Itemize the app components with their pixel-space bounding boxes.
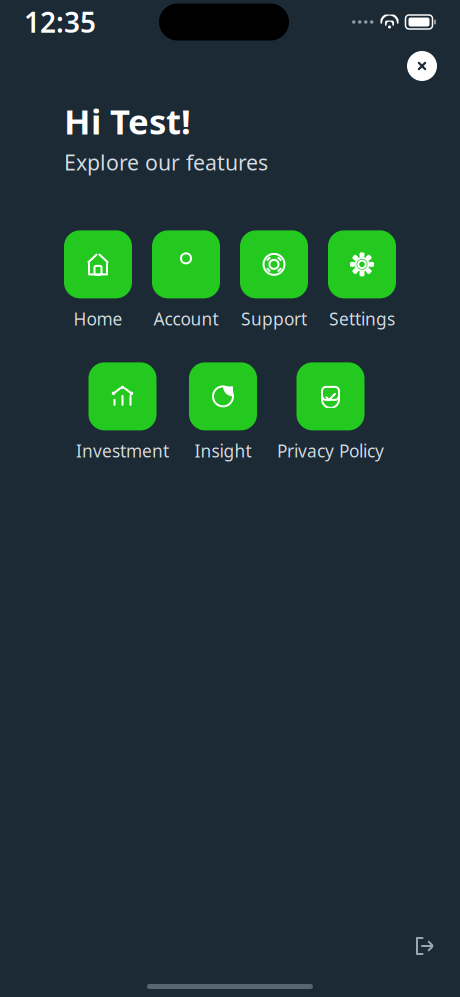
staticText: Privacy Policy — [277, 439, 384, 462]
button[interactable]: Insight — [189, 362, 257, 462]
button[interactable]: Close — [400, 44, 444, 88]
staticText: Investment — [76, 439, 169, 462]
staticText: Account — [153, 307, 218, 330]
staticText: Home — [73, 307, 122, 330]
button[interactable]: Investment — [76, 362, 169, 462]
staticText: Explore our features — [64, 148, 268, 176]
button[interactable]: Home — [64, 230, 132, 330]
staticText: 12:35 — [24, 3, 96, 41]
button[interactable]: Settings — [328, 230, 396, 330]
staticText: Settings — [329, 307, 395, 330]
button[interactable]: Support — [240, 230, 308, 330]
staticText: Support — [241, 307, 307, 330]
button[interactable]: Log out — [402, 924, 446, 968]
staticText: Hi Test! — [64, 98, 191, 144]
button[interactable]: Account — [152, 230, 220, 330]
staticText: Insight — [194, 439, 251, 462]
button[interactable]: Privacy Policy — [277, 362, 384, 462]
